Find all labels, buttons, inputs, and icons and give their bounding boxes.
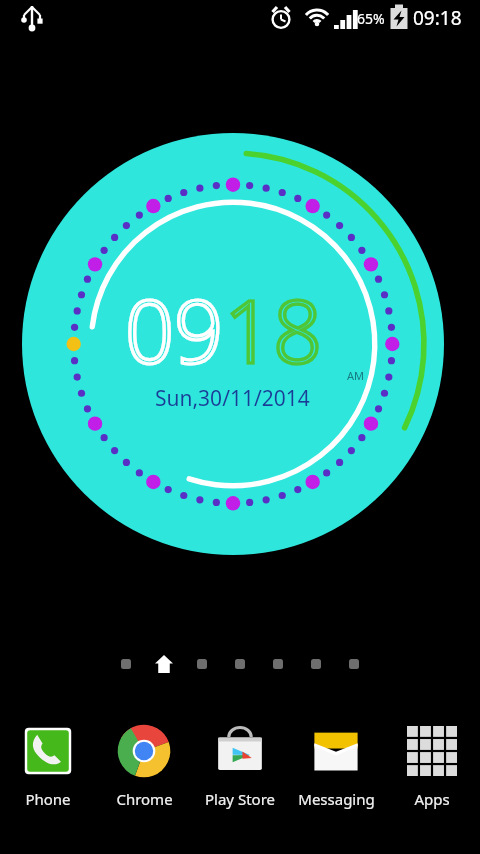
button[interactable]: Apps: [386, 718, 478, 802]
button[interactable]: Page 1: [107, 653, 145, 675]
staticText: Apps: [414, 789, 450, 809]
staticText: AM: [347, 368, 365, 383]
staticText: 09:18: [413, 5, 462, 31]
staticText: 18: [224, 271, 323, 388]
button[interactable]: Phone: [2, 718, 94, 802]
button[interactable]: Chrome: [98, 718, 190, 802]
button[interactable]: Page 4: [221, 653, 259, 675]
staticText: Phone: [25, 789, 71, 809]
button[interactable]: Page 6: [297, 653, 335, 675]
button[interactable]: Home screen: [145, 653, 183, 675]
staticText: Chrome: [116, 789, 173, 809]
staticText: 09: [125, 271, 224, 388]
staticText: Messaging: [298, 789, 375, 809]
button[interactable]: Clock widget 09:18 AM Sun,30/11/2014: [22, 133, 444, 555]
button[interactable]: Play Store: [194, 718, 286, 802]
button[interactable]: Page 5: [259, 653, 297, 675]
staticText: Sun,30/11/2014: [155, 384, 310, 413]
button[interactable]: Page 3: [183, 653, 221, 675]
staticText: 65%: [357, 9, 385, 28]
button[interactable]: Page 7: [335, 653, 373, 675]
button[interactable]: Messaging: [290, 718, 382, 802]
staticText: Play Store: [205, 789, 275, 809]
